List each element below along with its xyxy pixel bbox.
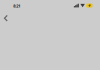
button[interactable]: Back — [0, 11, 14, 26]
staticText: 8:21 — [13, 3, 20, 9]
